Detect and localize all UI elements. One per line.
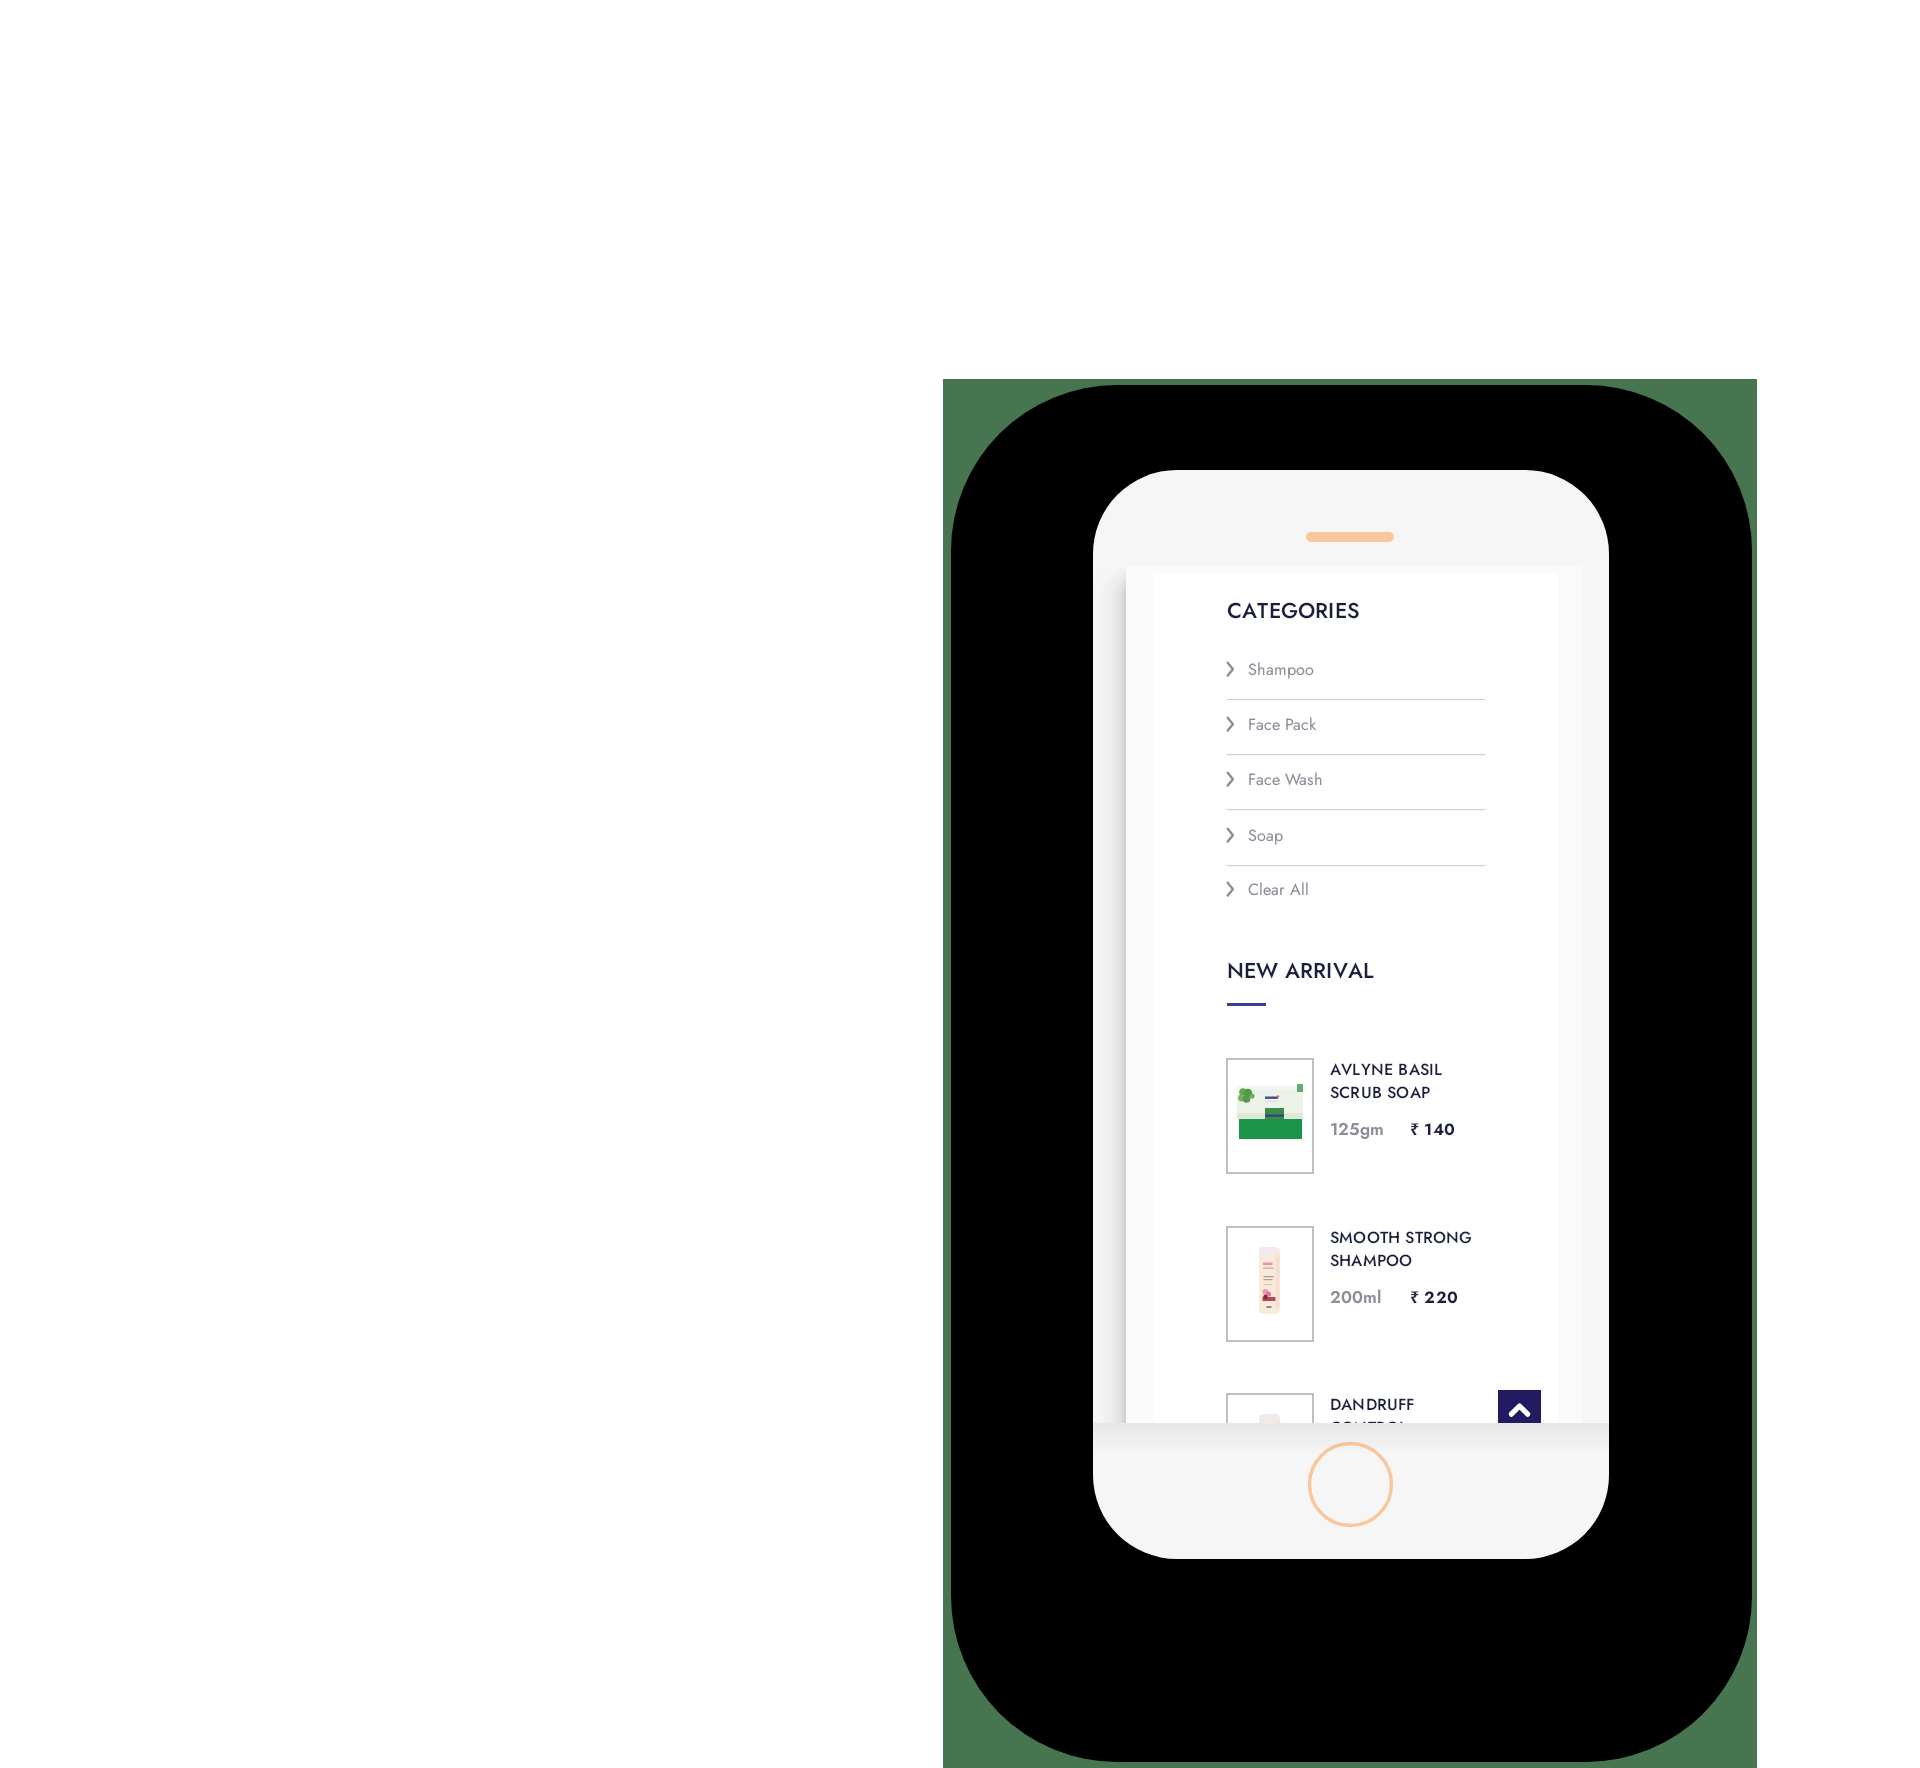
button[interactable] — [1227, 1059, 1517, 1173]
button[interactable]: Clear All — [1223, 875, 1489, 905]
button[interactable]: Back to top — [1498, 1391, 1541, 1434]
button[interactable] — [1227, 1227, 1517, 1341]
button[interactable]: Face Wash — [1223, 765, 1489, 795]
button[interactable]: Shampoo — [1223, 655, 1489, 685]
button[interactable] — [1227, 1394, 1517, 1508]
button[interactable]: Face Pack — [1223, 710, 1489, 740]
button[interactable]: Soap — [1223, 821, 1489, 851]
